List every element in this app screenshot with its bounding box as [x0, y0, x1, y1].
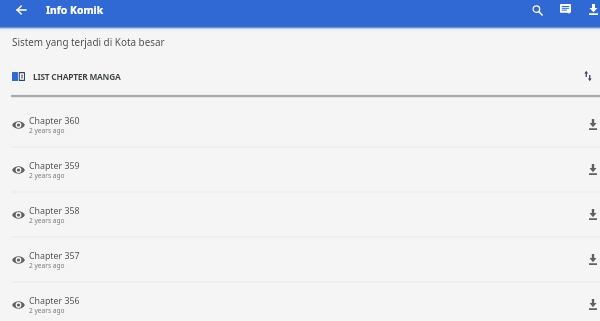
button[interactable]: Download chapter 360	[583, 114, 600, 134]
staticText: 2 years ago	[29, 126, 65, 135]
staticText: Chapter 356	[29, 295, 80, 307]
button[interactable]: Chapter 356	[0, 282, 600, 321]
staticText: Chapter 358	[29, 205, 80, 217]
button[interactable]: Search	[527, 0, 547, 20]
button[interactable]: Sort	[578, 66, 598, 86]
button[interactable]: Download chapter 358	[583, 204, 600, 224]
button[interactable]: Download all	[583, 0, 600, 19]
staticText: 2 years ago	[29, 216, 65, 225]
button[interactable]: Download chapter 359	[583, 159, 600, 179]
staticText: 2 years ago	[29, 171, 65, 180]
staticText: Info Komik	[46, 3, 104, 17]
button[interactable]: Back	[8, 0, 34, 20]
staticText: 2 years ago	[29, 261, 65, 270]
button[interactable]: Chapter 359	[0, 147, 600, 192]
button[interactable]: Download chapter 356	[583, 294, 600, 314]
staticText: Chapter 359	[29, 160, 80, 172]
button[interactable]: Chapter 357	[0, 237, 600, 282]
staticText: Chapter 357	[29, 250, 80, 262]
staticText: Chapter 360	[29, 115, 80, 127]
button[interactable]: Comments	[555, 0, 575, 19]
staticText: Sistem yang terjadi di Kota besar	[12, 35, 165, 48]
staticText: LIST CHAPTER MANGA	[33, 71, 121, 82]
button[interactable]: Download chapter 357	[583, 249, 600, 269]
button[interactable]: Chapter 358	[0, 192, 600, 237]
button[interactable]: Chapter 360	[0, 102, 600, 147]
staticText: 2 years ago	[29, 306, 65, 315]
